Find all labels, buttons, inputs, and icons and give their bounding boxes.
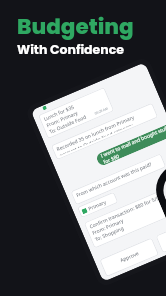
button[interactable]: Lunch for $35 — [38, 87, 114, 139]
staticText: Lunch for $35 — [43, 103, 76, 123]
staticText: Approve — [119, 250, 140, 264]
button[interactable]: Reject — [155, 214, 166, 253]
staticText: account to Outside Food category — [58, 122, 133, 156]
staticText: From: Primary — [45, 109, 79, 129]
button[interactable]: Recorded 35 on lunch from Primary — [51, 102, 158, 160]
staticText: From which account was this paid? — [75, 161, 153, 199]
staticText: I went to mall and bought stuff for $80 — [100, 123, 166, 165]
button[interactable]: Primary — [77, 192, 118, 218]
button[interactable]: Approve — [99, 237, 159, 277]
staticText: With Confidence — [17, 41, 124, 58]
staticText: To: Outside Food — [48, 114, 87, 135]
staticText: Confirm transaction: $80 for 5/5 — [88, 194, 161, 230]
button[interactable]: I went to mall and bought stuff for $80 — [95, 123, 166, 167]
staticText: Primary — [87, 199, 107, 212]
staticText: To: Shopping — [94, 225, 125, 243]
button[interactable]: Confirm transaction: $80 for 5/5 — [84, 180, 166, 249]
staticText: Budgeting — [17, 11, 134, 41]
button[interactable]: From which account was this paid? — [70, 153, 166, 205]
staticText: Recorded 35 on lunch from Primary — [56, 114, 136, 153]
staticText: 05:29 AM — [94, 106, 108, 116]
staticText: From: Primary — [91, 217, 125, 237]
